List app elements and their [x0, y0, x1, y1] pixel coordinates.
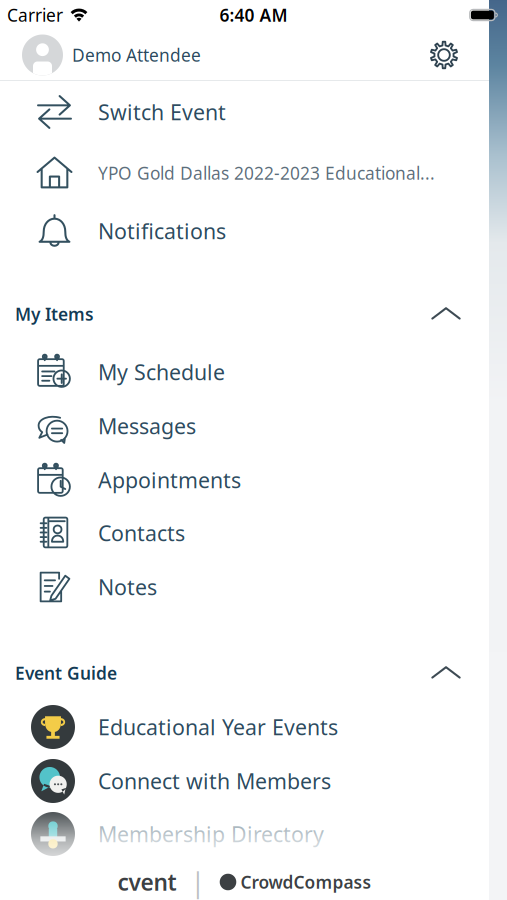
staticText: cvent — [117, 867, 176, 897]
staticText: My Schedule — [98, 358, 225, 386]
button[interactable]: My Items — [0, 272, 489, 343]
button[interactable]: My Schedule — [0, 343, 489, 399]
button[interactable]: Connect with Members — [0, 754, 489, 807]
staticText: Contacts — [98, 519, 185, 547]
button[interactable]: Demo Attendee — [0, 30, 201, 80]
button[interactable]: Contacts — [0, 506, 489, 560]
staticText: My Items — [15, 302, 94, 325]
button[interactable]: Notes — [0, 560, 489, 630]
staticText: Notifications — [98, 217, 226, 245]
staticText: 6:40 AM — [219, 3, 287, 26]
staticText: Carrier — [7, 3, 63, 26]
staticText: Event Guide — [15, 661, 117, 684]
button[interactable]: Educational Year Events — [0, 700, 489, 754]
staticText: Messages — [98, 412, 196, 440]
staticText: Membership Directory — [98, 820, 324, 848]
staticText: | — [190, 864, 205, 900]
staticText: Notes — [98, 573, 157, 601]
button[interactable]: Membership Directory — [0, 807, 489, 858]
staticText: YPO Gold Dallas 2022-2023 Educational... — [98, 161, 435, 184]
staticText: Demo Attendee — [72, 43, 201, 66]
staticText: Appointments — [98, 466, 241, 494]
button[interactable]: Switch Event — [0, 81, 489, 142]
button[interactable]: Appointments — [0, 453, 489, 506]
staticText: Connect with Members — [98, 767, 331, 795]
staticText: Switch Event — [98, 98, 226, 126]
button[interactable]: Settings — [415, 30, 489, 80]
button[interactable]: Messages — [0, 399, 489, 453]
button[interactable]: Event Guide — [0, 630, 489, 700]
staticText: Educational Year Events — [98, 713, 338, 741]
button[interactable]: YPO Gold Dallas 2022-2023 Educational... — [0, 142, 489, 202]
button[interactable]: Notifications — [0, 202, 489, 272]
staticText: CrowdCompass — [240, 870, 371, 893]
